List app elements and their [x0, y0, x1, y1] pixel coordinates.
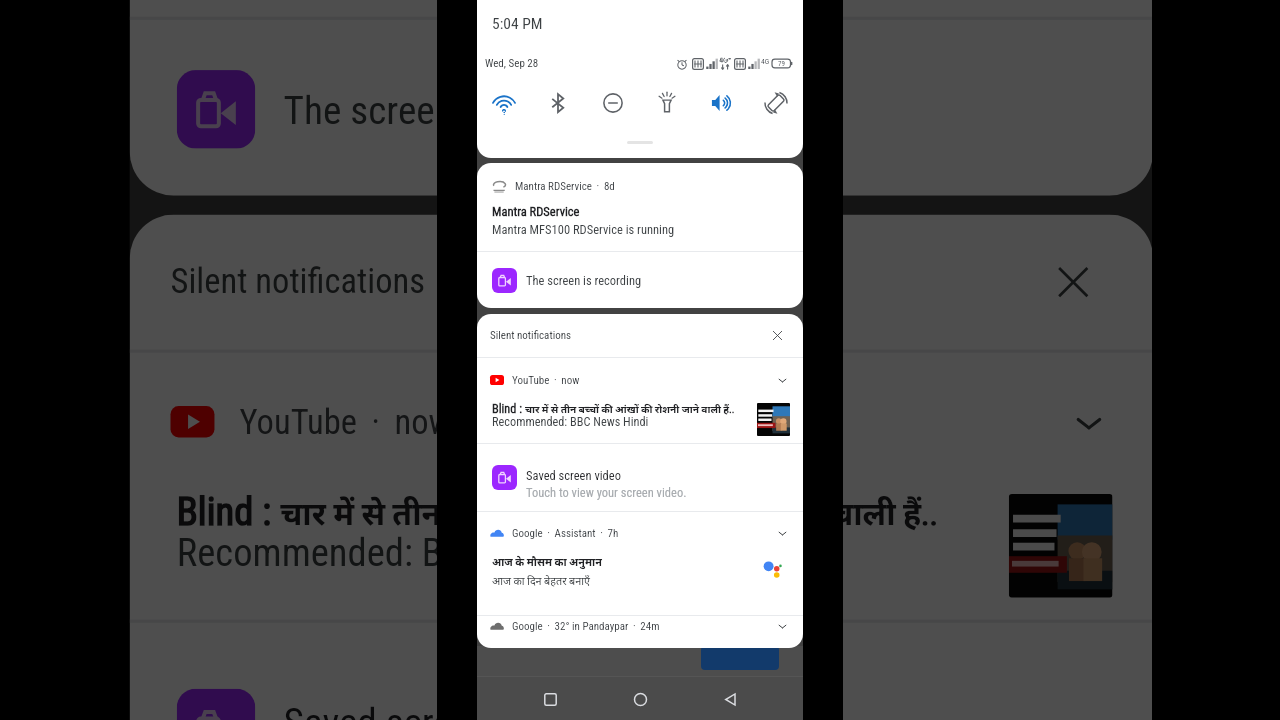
staticText: Mantra RDService · 8d [515, 180, 615, 193]
staticText: Wed, Sep 28 [485, 57, 539, 70]
button[interactable]: Do not disturb [591, 81, 635, 125]
button[interactable]: Saved screen video [492, 444, 790, 511]
button[interactable]: YouTube · now [130, 353, 1153, 620]
staticText: YouTube · now [512, 374, 580, 387]
button[interactable]: Back [713, 682, 747, 716]
staticText: Mantra RDService [492, 204, 580, 219]
staticText: आज के मौसम का अनुमान [492, 554, 602, 569]
button[interactable]: Home [623, 682, 657, 716]
button[interactable]: Flashlight [645, 81, 689, 125]
staticText: Touch to view your screen video. [526, 485, 687, 500]
button[interactable]: The screen is recording [177, 20, 1112, 196]
staticText: आज का दिन बेहतर बनाएँ [492, 573, 590, 588]
staticText: Google · 32° in Pandaypar · 24m [512, 620, 660, 633]
staticText: Saved screen video [283, 698, 582, 720]
button[interactable]: YouTube · now [477, 358, 803, 443]
staticText: 5:04 PM [492, 15, 543, 33]
button[interactable]: Expand [1062, 397, 1112, 447]
button[interactable]: Bluetooth [536, 81, 580, 125]
button[interactable]: Sound [700, 81, 744, 125]
button[interactable]: Saved screen video [177, 623, 1112, 720]
button[interactable]: Wi-Fi [482, 81, 526, 125]
staticText: YouTube · now [240, 403, 453, 444]
staticText: The screen is recording [526, 273, 642, 288]
staticText: Google · Assistant · 7h [512, 527, 619, 540]
staticText: Recommended: BBC News Hindi [177, 532, 670, 576]
staticText: The screen is recording [283, 86, 648, 133]
button[interactable]: Recents [533, 682, 567, 716]
button[interactable]: Dismiss [1040, 249, 1103, 312]
staticText: Mantra MFS100 RDService is running [492, 222, 675, 237]
button[interactable]: Auto rotate [754, 81, 798, 125]
staticText: Saved screen video [526, 468, 621, 483]
staticText: 4G [761, 57, 770, 66]
staticText: Blind : चार में से तीन बच्चों की आंखों क… [492, 402, 735, 416]
button[interactable]: Google · Assistant · 7h [477, 512, 803, 615]
staticText: Silent notifications [170, 262, 428, 302]
staticText: Recommended: BBC News Hindi [492, 415, 649, 429]
staticText: 79 [778, 60, 785, 68]
staticText: Blind : चार में से तीन बच्चों की आंखों क… [177, 491, 940, 535]
button[interactable]: Expand [774, 372, 790, 388]
button[interactable]: Expand [774, 618, 790, 634]
button[interactable]: Expand [774, 525, 790, 541]
button[interactable]: Dismiss [767, 325, 787, 345]
button[interactable]: The screen is recording [492, 252, 790, 308]
staticText: Silent notifications [490, 329, 572, 342]
